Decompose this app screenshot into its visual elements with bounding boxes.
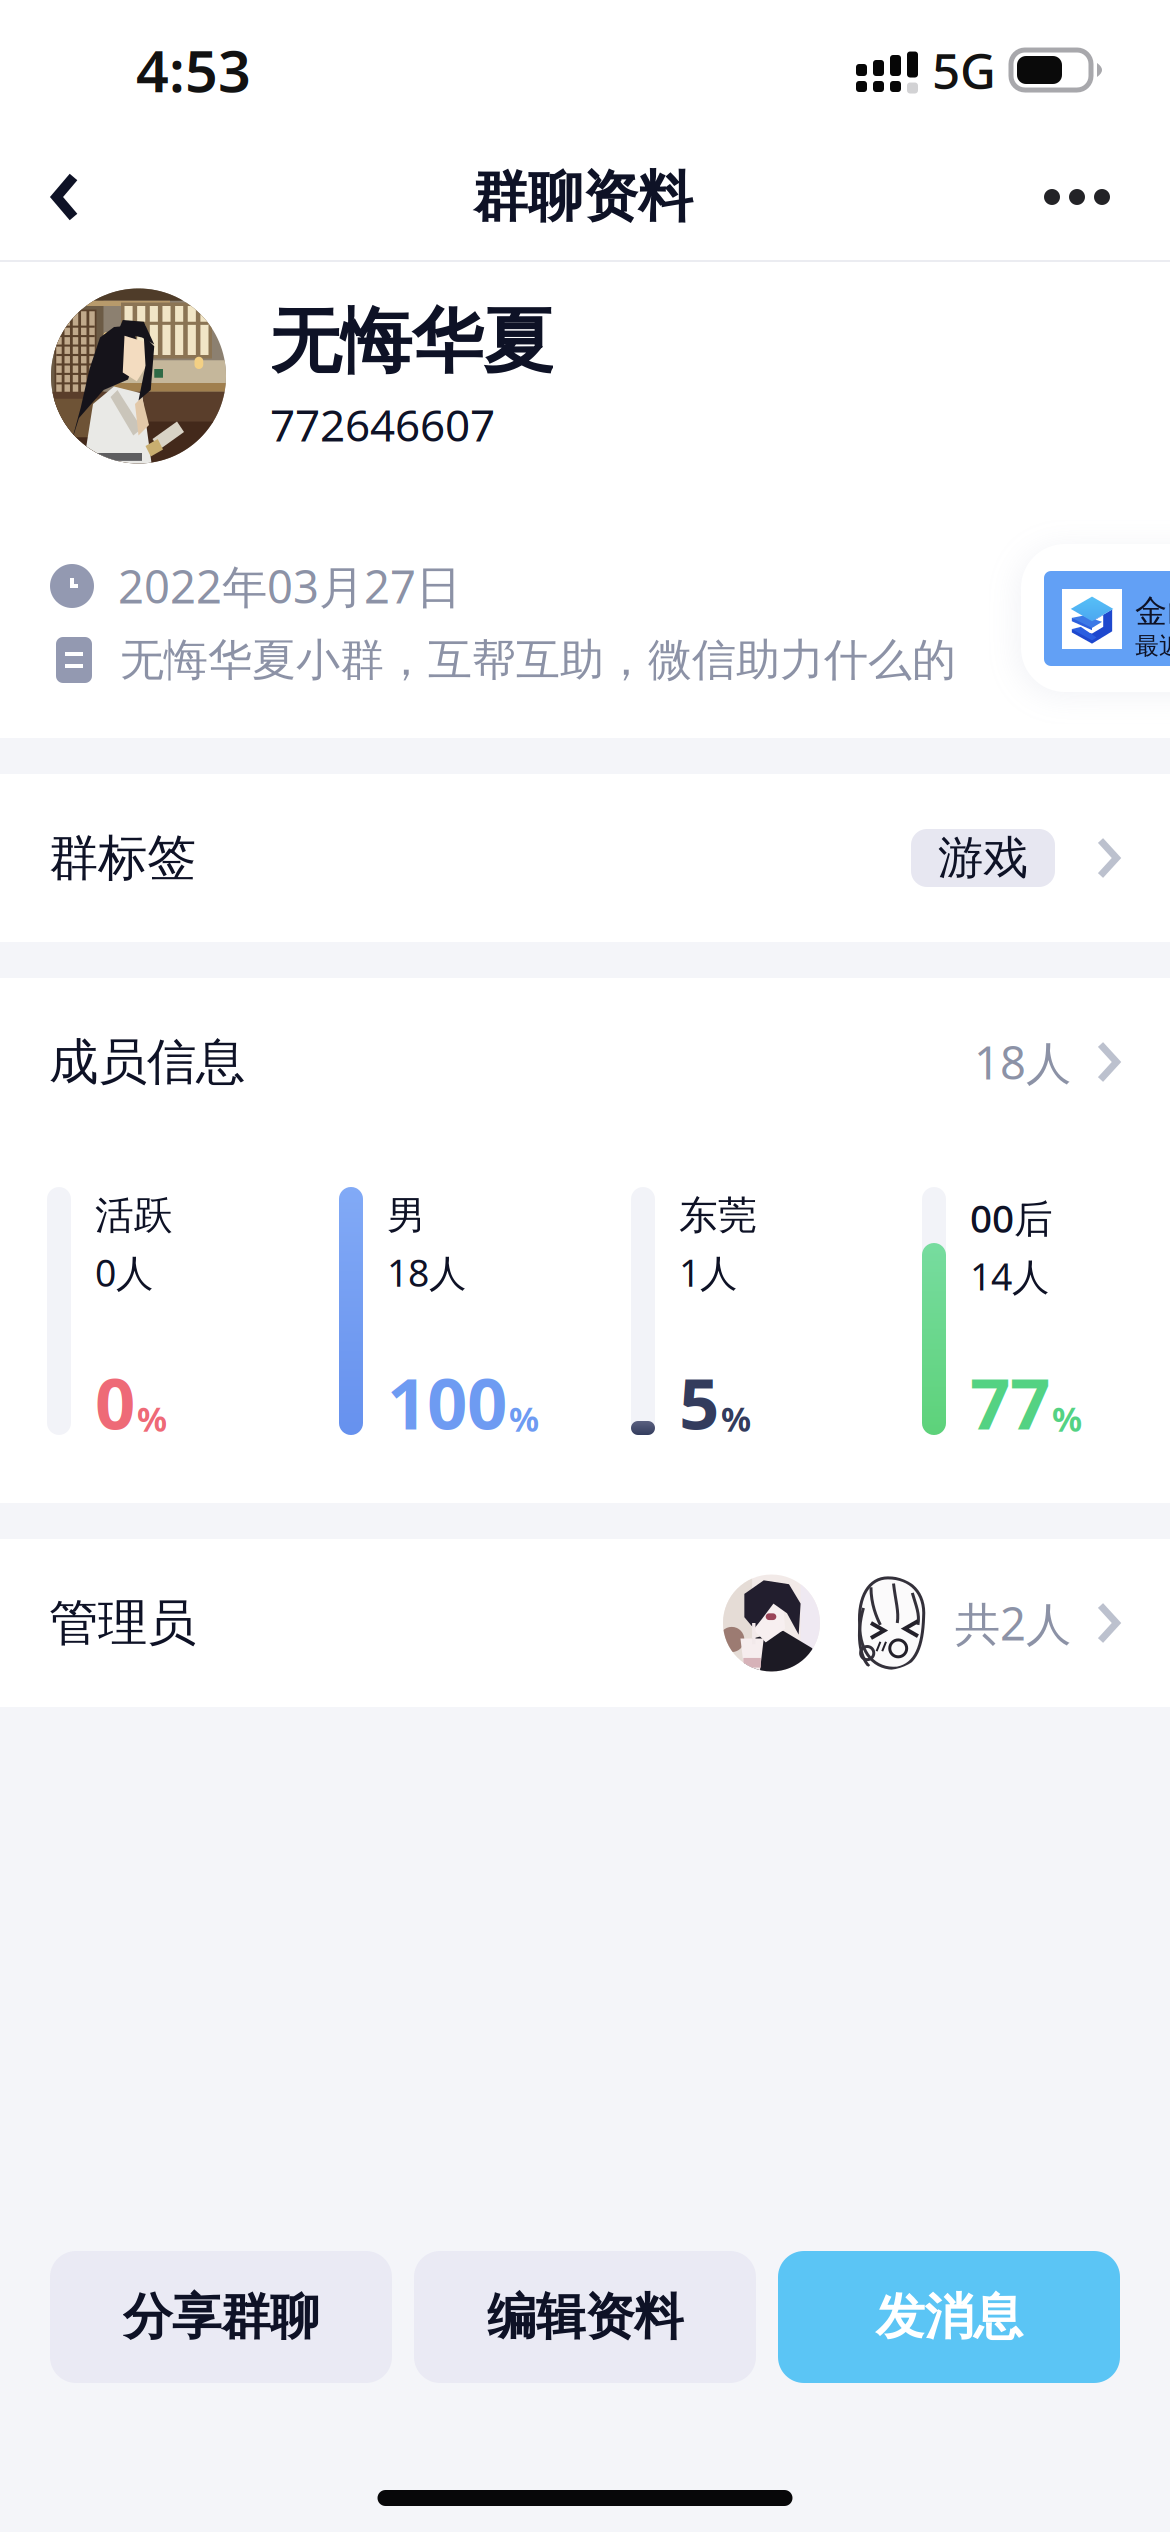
staticText: 14人 (970, 1251, 1049, 1301)
button[interactable]: 发消息 (778, 2251, 1120, 2383)
button[interactable]: 分享群聊 (50, 2251, 392, 2383)
staticText: 发消息 (875, 2287, 1022, 2347)
staticText: 0人 (95, 1247, 153, 1297)
staticText: 0 (95, 1355, 135, 1449)
staticText: 100 (387, 1355, 507, 1449)
staticText: 4:53 (136, 32, 251, 108)
staticText: 77 (970, 1355, 1050, 1449)
staticText: 772646607 (270, 395, 495, 454)
staticText: % (137, 1397, 167, 1441)
button[interactable]: 群标签 (0, 774, 1170, 942)
button[interactable]: 金山文档 最近使用 (1021, 544, 1170, 692)
button[interactable]: 管理员 (0, 1539, 1170, 1707)
staticText: 金山文档 (1135, 592, 1170, 631)
button[interactable]: 成员信息 (0, 977, 1170, 1147)
staticText: % (1052, 1397, 1082, 1441)
staticText: 5G (932, 37, 996, 103)
button[interactable]: More options (1007, 132, 1147, 262)
button[interactable]: 编辑资料 (414, 2251, 756, 2383)
staticText: 游戏 (938, 830, 1028, 886)
button[interactable]: 无悔华夏 (0, 261, 1170, 491)
staticText: 最近使用 (1135, 631, 1170, 661)
staticText: 2022年03月27日 (118, 556, 461, 616)
staticText: 5 (679, 1355, 719, 1449)
staticText: 无悔华夏 (270, 298, 554, 385)
staticText: 成员信息 (49, 1032, 245, 1092)
staticText: 18人 (387, 1247, 466, 1297)
staticText: 东莞 (679, 1192, 757, 1239)
staticText: 18人 (974, 1032, 1071, 1092)
staticText: % (721, 1397, 751, 1441)
staticText: 活跃 (95, 1192, 173, 1239)
staticText: 共2人 (955, 1593, 1071, 1653)
staticText: 群聊资料 (473, 163, 693, 230)
button[interactable]: Back (0, 132, 130, 262)
staticText: 无悔华夏小群，互帮互助，微信助力什么的 (120, 633, 956, 687)
staticText: 管理员 (49, 1593, 196, 1653)
staticText: 男 (387, 1192, 426, 1239)
staticText: 编辑资料 (487, 2287, 683, 2347)
staticText: % (509, 1397, 539, 1441)
staticText: 分享群聊 (123, 2287, 319, 2347)
staticText: 群标签 (49, 828, 196, 888)
staticText: 00后 (970, 1192, 1053, 1243)
staticText: 1人 (679, 1247, 737, 1297)
